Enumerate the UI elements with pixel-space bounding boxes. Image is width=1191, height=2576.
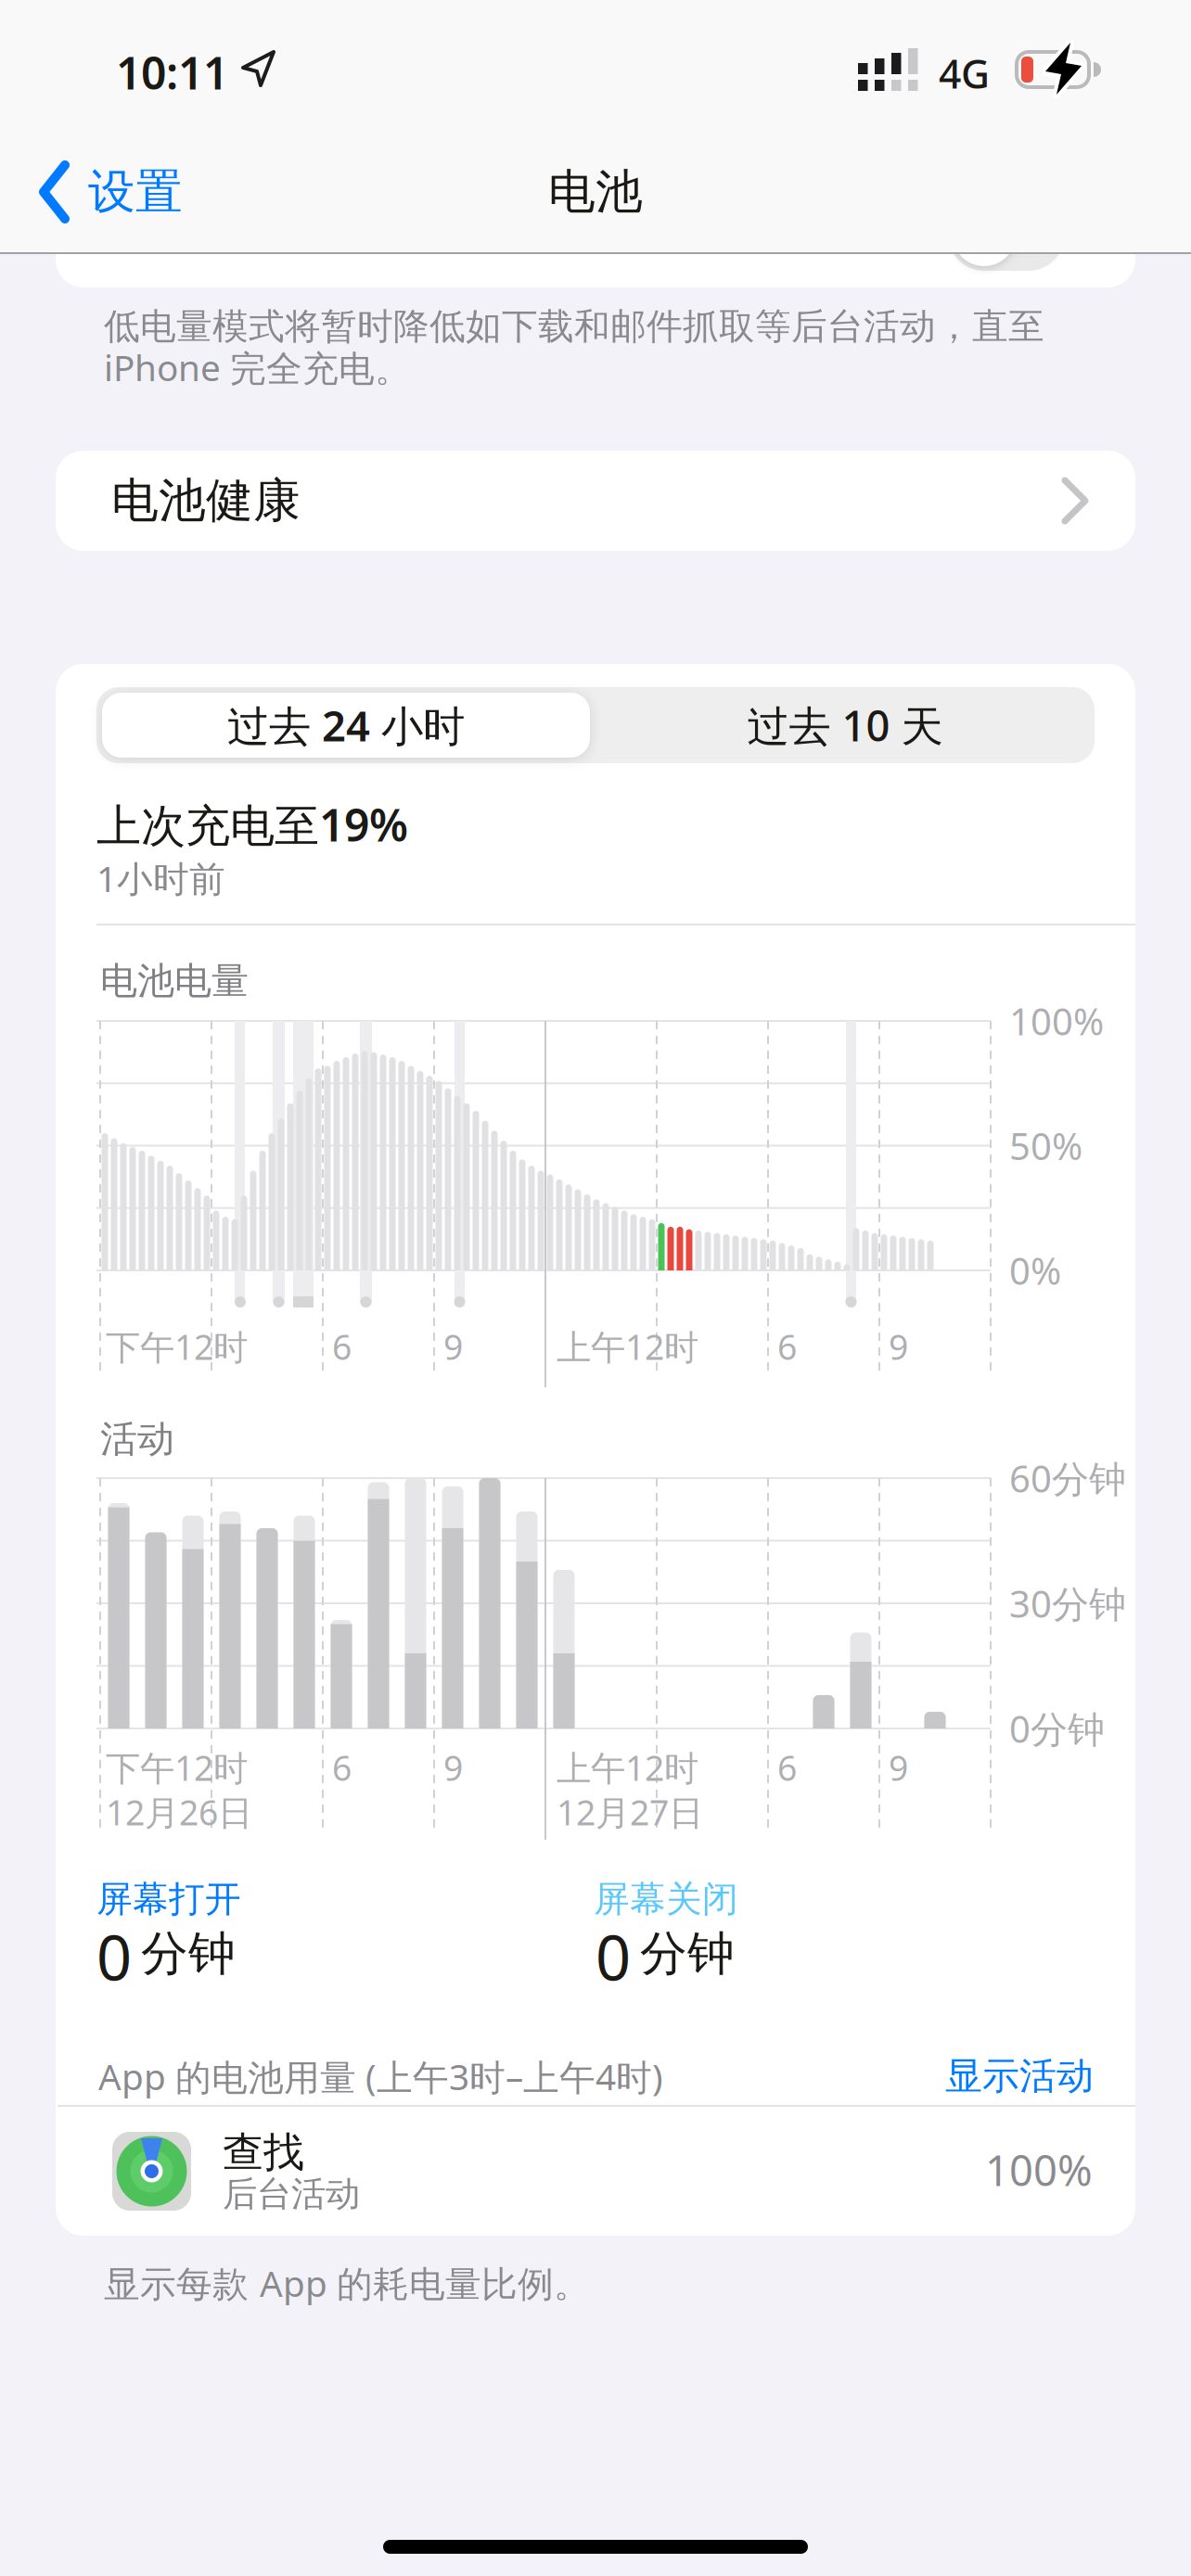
- staticText: 电池: [548, 163, 643, 221]
- button[interactable]: 过去 24 小时: [102, 693, 590, 758]
- staticText: 1小时前: [96, 854, 225, 902]
- staticText: 9: [443, 1744, 463, 1790]
- staticText: 过去 10 天: [747, 697, 943, 753]
- staticText: 显示活动: [945, 2053, 1094, 2099]
- staticText: 60分钟: [1009, 1453, 1126, 1503]
- staticText: 0: [96, 1915, 132, 1998]
- staticText: 分钟: [141, 1925, 236, 1983]
- staticText: 低电量模式将暂时降低如下载和邮件抓取等后台活动，直至: [104, 304, 1044, 348]
- staticText: 下午12时: [106, 1744, 248, 1790]
- staticText: 9: [889, 1323, 908, 1369]
- staticText: 6: [777, 1323, 797, 1369]
- staticText: 后台活动: [223, 2173, 360, 2215]
- staticText: 上午12时: [557, 1744, 698, 1790]
- button[interactable]: 低电量模式: [948, 198, 1065, 271]
- staticText: 0: [595, 1915, 631, 1998]
- button[interactable]: 查找: [56, 2114, 1135, 2244]
- staticText: 100%: [1009, 996, 1104, 1046]
- staticText: 上次充电至19%: [96, 795, 408, 854]
- staticText: 10:11: [116, 43, 228, 102]
- button[interactable]: 过去 10 天: [595, 687, 1095, 763]
- staticText: 过去 24 小时: [227, 697, 465, 753]
- staticText: 9: [889, 1744, 908, 1790]
- staticText: 4G: [939, 47, 990, 100]
- staticText: 屏幕关闭: [594, 1877, 738, 1921]
- staticText: 电池健康: [111, 472, 301, 530]
- staticText: App 的电池用量 (上午3时–上午4时): [98, 2052, 663, 2100]
- staticText: iPhone 完全充电。: [104, 343, 411, 391]
- staticText: 6: [777, 1744, 797, 1790]
- staticText: 下午12时: [106, 1323, 248, 1369]
- staticText: 0分钟: [1009, 1704, 1105, 1753]
- staticText: 6: [332, 1323, 352, 1369]
- staticText: 12月26日: [106, 1789, 252, 1835]
- button[interactable]: 电池健康: [56, 451, 1135, 551]
- staticText: 屏幕打开: [96, 1877, 241, 1921]
- staticText: 0%: [1009, 1246, 1061, 1295]
- staticText: 上午12时: [557, 1323, 698, 1369]
- button[interactable]: 显示活动: [815, 2056, 1094, 2097]
- staticText: 活动: [100, 1416, 174, 1462]
- button[interactable]: 设置: [37, 163, 1191, 2576]
- staticText: 12月27日: [557, 1789, 703, 1835]
- staticText: 9: [443, 1323, 463, 1369]
- staticText: 分钟: [640, 1925, 735, 1983]
- staticText: 显示每款 App 的耗电量比例。: [104, 2259, 590, 2307]
- staticText: 6: [332, 1744, 352, 1790]
- staticText: 电池电量: [100, 958, 249, 1004]
- staticText: 100%: [985, 2142, 1093, 2198]
- staticText: 查找: [223, 2127, 304, 2177]
- staticText: 50%: [1009, 1121, 1082, 1170]
- staticText: 30分钟: [1009, 1579, 1126, 1628]
- staticText: 设置: [88, 163, 183, 221]
